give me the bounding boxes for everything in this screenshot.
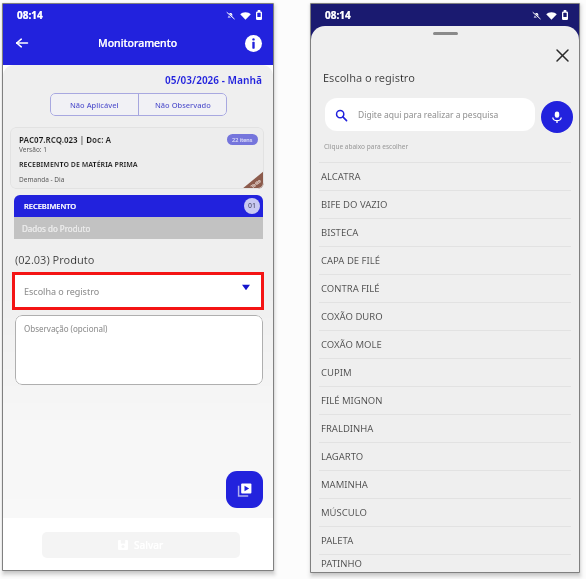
staticText: FRALDINHA bbox=[321, 422, 374, 435]
staticText: Demanda - Dia bbox=[19, 175, 65, 184]
staticText: ALCATRA bbox=[321, 170, 361, 183]
button[interactable]: Observação (opcional) bbox=[15, 315, 263, 385]
button[interactable]: Voice search bbox=[541, 101, 573, 133]
button[interactable]: FILÉ MIGNON bbox=[311, 386, 579, 414]
staticText: COXÃO MOLE bbox=[321, 338, 382, 351]
staticText: PAC07.RCQ.023 | Doc: A bbox=[19, 134, 112, 145]
button[interactable]: Information bbox=[243, 33, 263, 53]
staticText: RECEBIMENTO DE MATÉRIA PRIMA bbox=[19, 160, 138, 170]
button[interactable]: COXÃO DURO bbox=[311, 302, 579, 330]
staticText: CAPA DE FILÉ bbox=[321, 254, 380, 267]
button[interactable]: BIFE DO VAZIO bbox=[311, 190, 579, 218]
staticText: 01 bbox=[248, 201, 257, 211]
staticText: 05/03/2026 - Manhã bbox=[165, 73, 262, 87]
staticText: COXÃO DURO bbox=[321, 310, 383, 323]
staticText: (02.03) Produto bbox=[15, 252, 95, 267]
button[interactable]: Escolha o registro bbox=[15, 275, 261, 307]
staticText: Versão: 1 bbox=[19, 145, 47, 154]
button[interactable]: LAGARTO bbox=[311, 442, 579, 470]
staticText: Escolha o registro bbox=[323, 70, 415, 85]
button[interactable]: MAMINHA bbox=[311, 470, 579, 498]
button[interactable]: FRALDINHA bbox=[311, 414, 579, 442]
button[interactable]: Close bbox=[551, 44, 573, 66]
button[interactable]: COXÃO MOLE bbox=[311, 330, 579, 358]
button[interactable]: CAPA DE FILÉ bbox=[311, 246, 579, 274]
button[interactable]: Digite aqui para realizar a pesquisa bbox=[325, 98, 535, 131]
staticText: 22 itens bbox=[232, 136, 253, 143]
staticText: Não Observado bbox=[155, 100, 211, 110]
staticText: Digite aqui para realizar a pesquisa bbox=[358, 109, 499, 121]
staticText: CONTRA FILÉ bbox=[321, 282, 380, 295]
staticText: LAGARTO bbox=[321, 450, 364, 463]
button[interactable]: Media library bbox=[226, 471, 263, 508]
staticText: Clique abaixo para escolher bbox=[324, 142, 409, 151]
staticText: BISTECA bbox=[321, 226, 359, 239]
staticText: MÚSCULO bbox=[321, 506, 367, 519]
staticText: Observação (opcional) bbox=[24, 323, 108, 334]
button[interactable]: Não Aplicável bbox=[50, 93, 138, 116]
button[interactable]: Back bbox=[11, 32, 33, 54]
staticText: BIFE DO VAZIO bbox=[321, 198, 388, 211]
staticText: PALETA bbox=[321, 534, 354, 547]
button[interactable]: ALCATRA bbox=[311, 162, 579, 190]
staticText: Teste bbox=[249, 177, 262, 189]
staticText: Não Aplicável bbox=[70, 100, 119, 110]
button[interactable]: Não Observado bbox=[139, 93, 227, 116]
staticText: 08:14 bbox=[325, 8, 351, 22]
staticText: CUPIM bbox=[321, 366, 352, 379]
staticText: PATINHO bbox=[321, 557, 362, 570]
button[interactable]: CUPIM bbox=[311, 358, 579, 386]
staticText: FILÉ MIGNON bbox=[321, 394, 383, 407]
staticText: Escolha o registro bbox=[24, 285, 100, 297]
button[interactable]: BISTECA bbox=[311, 218, 579, 246]
staticText: Dados do Produto bbox=[22, 223, 91, 234]
staticText: Salvar bbox=[134, 538, 164, 552]
button[interactable]: MÚSCULO bbox=[311, 498, 579, 526]
staticText: RECEBIMENTO bbox=[24, 201, 77, 211]
button[interactable]: CONTRA FILÉ bbox=[311, 274, 579, 302]
staticText: 08:14 bbox=[17, 8, 43, 22]
staticText: Monitoramento bbox=[98, 36, 178, 50]
staticText: MAMINHA bbox=[321, 478, 368, 491]
button[interactable]: PALETA bbox=[311, 526, 579, 554]
button[interactable]: PATINHO bbox=[311, 554, 579, 572]
